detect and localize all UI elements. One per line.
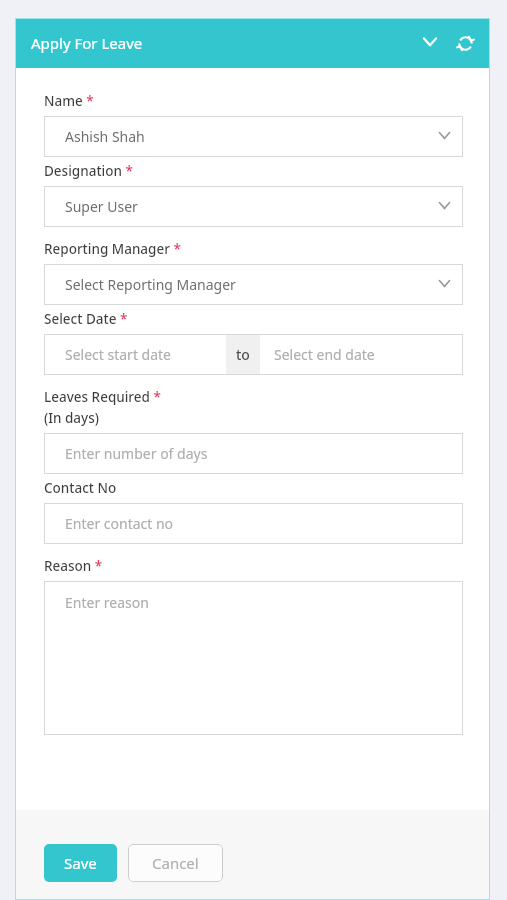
staticText: Super User — [65, 197, 138, 216]
staticText: Reason * — [44, 557, 103, 575]
staticText: Enter reason — [65, 593, 149, 612]
button[interactable]: Enter contact no — [44, 503, 463, 544]
button[interactable]: Save — [44, 844, 117, 882]
staticText: Save — [64, 853, 97, 873]
staticText: Name * — [44, 92, 94, 110]
staticText: (In days) — [44, 409, 99, 427]
button[interactable]: Refresh — [453, 31, 477, 55]
staticText: Ashish Shah — [65, 127, 145, 146]
button[interactable]: Enter number of days — [44, 433, 463, 474]
staticText: Select start date — [65, 345, 172, 364]
staticText: Select Date * — [44, 310, 128, 328]
staticText: Contact No — [44, 479, 117, 497]
button[interactable]: Enter reason — [44, 581, 463, 735]
button[interactable]: Collapse — [418, 31, 442, 55]
staticText: Select end date — [274, 345, 375, 364]
staticText: Leaves Required * — [44, 388, 161, 406]
staticText: to — [236, 345, 250, 364]
staticText: Enter number of days — [65, 444, 208, 463]
staticText: Enter contact no — [65, 514, 174, 533]
button[interactable]: Select end date — [260, 334, 463, 375]
staticText: Designation * — [44, 162, 133, 180]
button[interactable]: Super User — [44, 186, 463, 227]
button[interactable]: Ashish Shah — [44, 116, 463, 157]
button[interactable]: Cancel — [128, 844, 223, 882]
button[interactable]: Select start date — [44, 334, 226, 375]
button[interactable]: Select Reporting Manager — [44, 264, 463, 305]
staticText: Cancel — [152, 853, 199, 873]
staticText: Apply For Leave — [31, 33, 143, 53]
staticText: Select Reporting Manager — [65, 275, 236, 294]
staticText: Reporting Manager * — [44, 240, 181, 258]
